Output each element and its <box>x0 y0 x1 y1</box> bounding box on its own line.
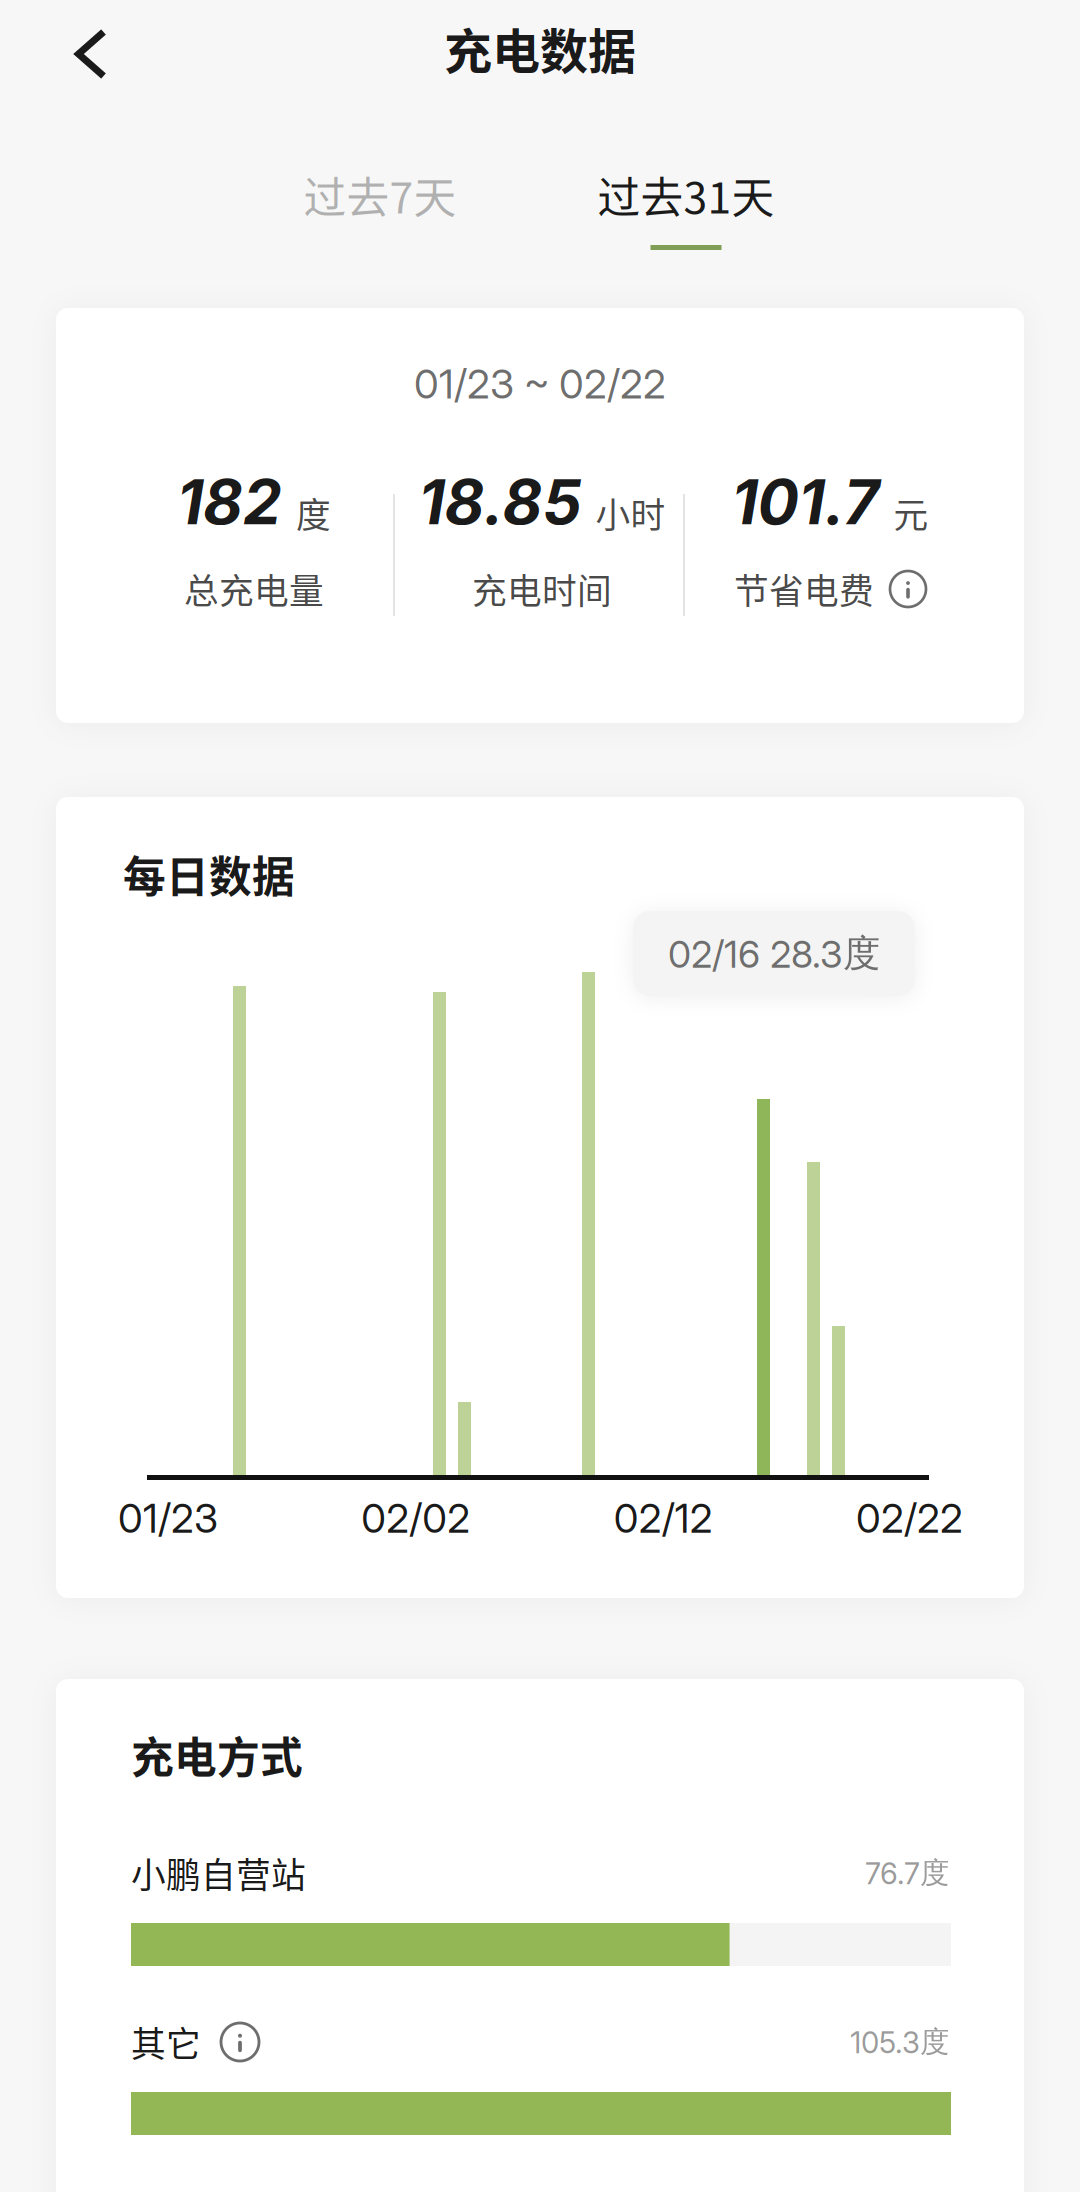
staticText: 每日数据 <box>123 843 295 905</box>
staticText: 充电数据 <box>444 13 636 83</box>
staticText: 182 <box>177 465 282 539</box>
staticText: 节省电费 <box>734 564 874 614</box>
staticText: 元 <box>893 488 928 538</box>
staticText: 02/02 <box>361 1494 470 1542</box>
staticText: 过去31天 <box>597 164 774 226</box>
button[interactable]: 返回 <box>21 2 161 106</box>
staticText: 其它 <box>131 2017 201 2067</box>
staticText: 02/16 28.3度 <box>668 930 880 977</box>
staticText: 充电方式 <box>131 1724 303 1786</box>
staticText: 度 <box>296 488 331 538</box>
staticText: 18.85 <box>418 465 581 539</box>
staticText: 01/23 <box>118 1494 218 1542</box>
staticText: 充电时间 <box>472 564 612 614</box>
staticText: 过去7天 <box>303 164 456 226</box>
staticText: 02/22 <box>856 1494 963 1542</box>
staticText: 02/12 <box>614 1494 713 1542</box>
button[interactable]: 过去31天 <box>571 155 801 255</box>
staticText: 101.7 <box>731 465 879 539</box>
staticText: 小时 <box>595 488 665 538</box>
staticText: 01/23 ~ 02/22 <box>414 360 666 408</box>
staticText: 总充电量 <box>184 564 324 614</box>
staticText: 76.7度 <box>865 1854 949 1891</box>
button[interactable]: 过去7天 <box>265 155 495 235</box>
staticText: 105.3度 <box>850 2023 949 2060</box>
staticText: 小鹏自营站 <box>131 1848 306 1898</box>
